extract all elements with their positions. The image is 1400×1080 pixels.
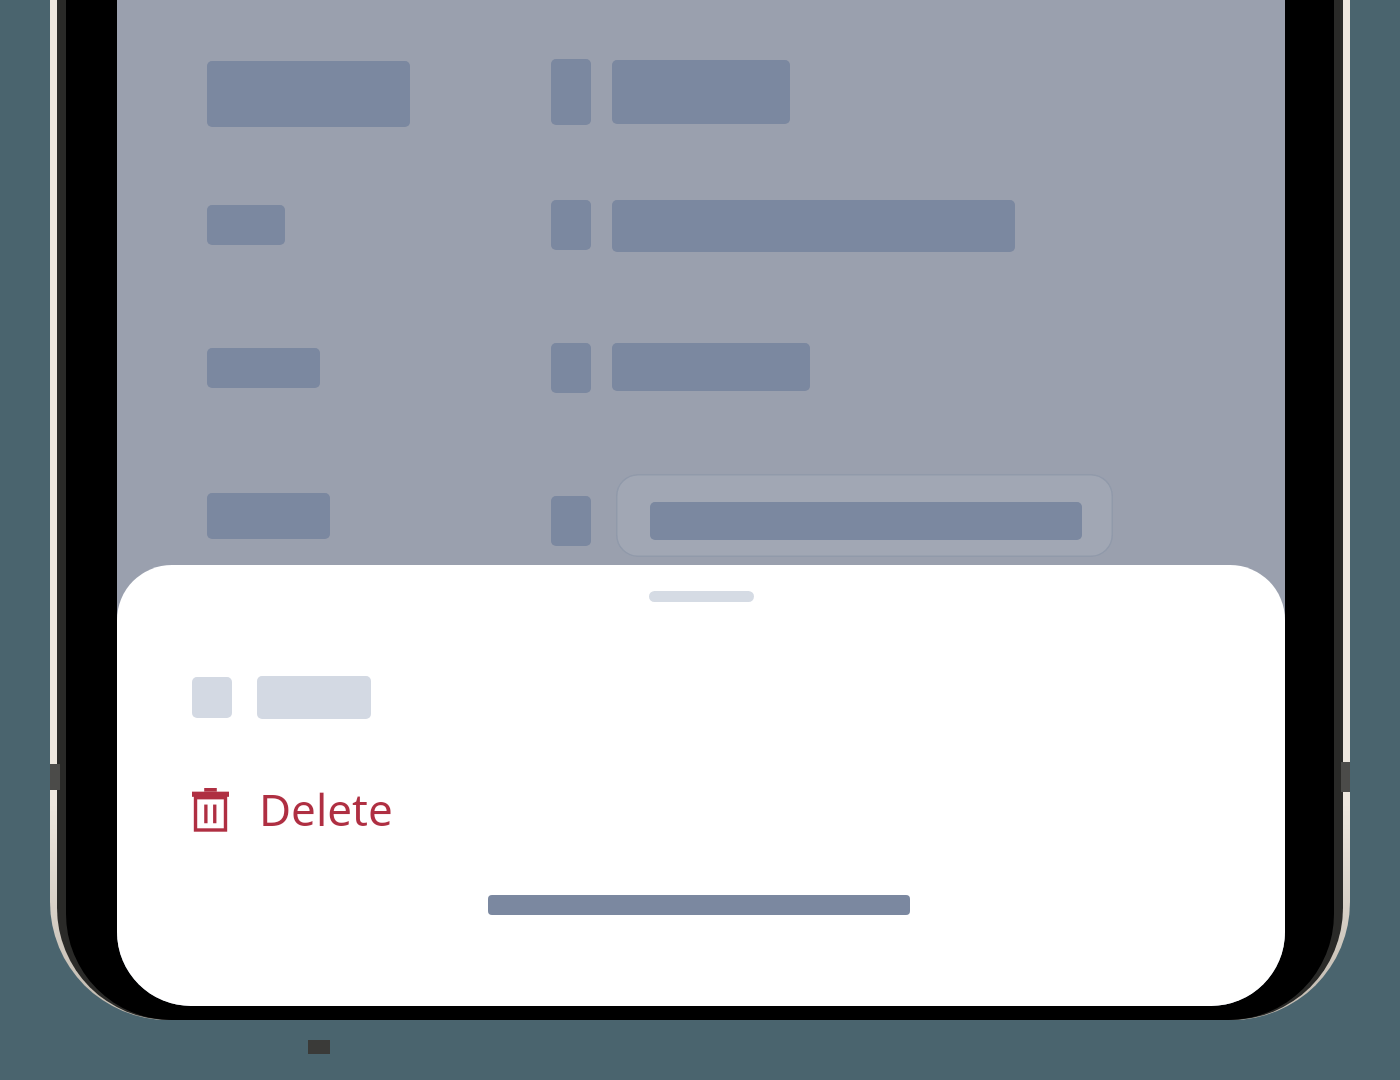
staticText: Delete	[259, 779, 393, 839]
other: Delete	[192, 788, 229, 831]
button[interactable]: Delete	[117, 761, 1285, 857]
button[interactable]	[192, 676, 371, 719]
